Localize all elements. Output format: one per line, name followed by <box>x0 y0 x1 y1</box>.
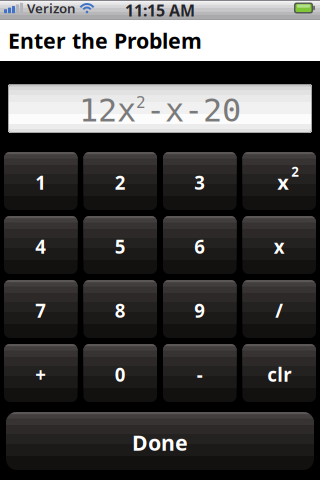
staticText: -x-20 <box>146 92 241 129</box>
staticText: 2 <box>291 163 299 180</box>
staticText: 5 <box>115 234 126 259</box>
staticText: x <box>274 234 285 259</box>
staticText: 3 <box>194 170 205 195</box>
staticText: 6 <box>194 234 205 259</box>
staticText: / <box>275 298 283 323</box>
staticText: 9 <box>194 298 205 323</box>
staticText: clr <box>267 362 291 387</box>
staticText: 7 <box>35 298 46 323</box>
staticText: 12x <box>79 92 136 129</box>
staticText: 11:15 AM <box>125 0 195 21</box>
staticText: + <box>35 362 46 387</box>
staticText: x <box>277 169 289 195</box>
staticText: - <box>197 362 203 387</box>
staticText: 0 <box>115 362 126 387</box>
staticText: Done <box>132 428 188 457</box>
staticText: 1 <box>35 170 46 195</box>
staticText: 4 <box>35 234 46 259</box>
staticText: 2 <box>115 170 126 195</box>
staticText: Verizon <box>27 0 76 17</box>
staticText: 2 <box>136 93 146 112</box>
staticText: Enter the Problem <box>8 26 202 55</box>
staticText: 8 <box>115 298 126 323</box>
